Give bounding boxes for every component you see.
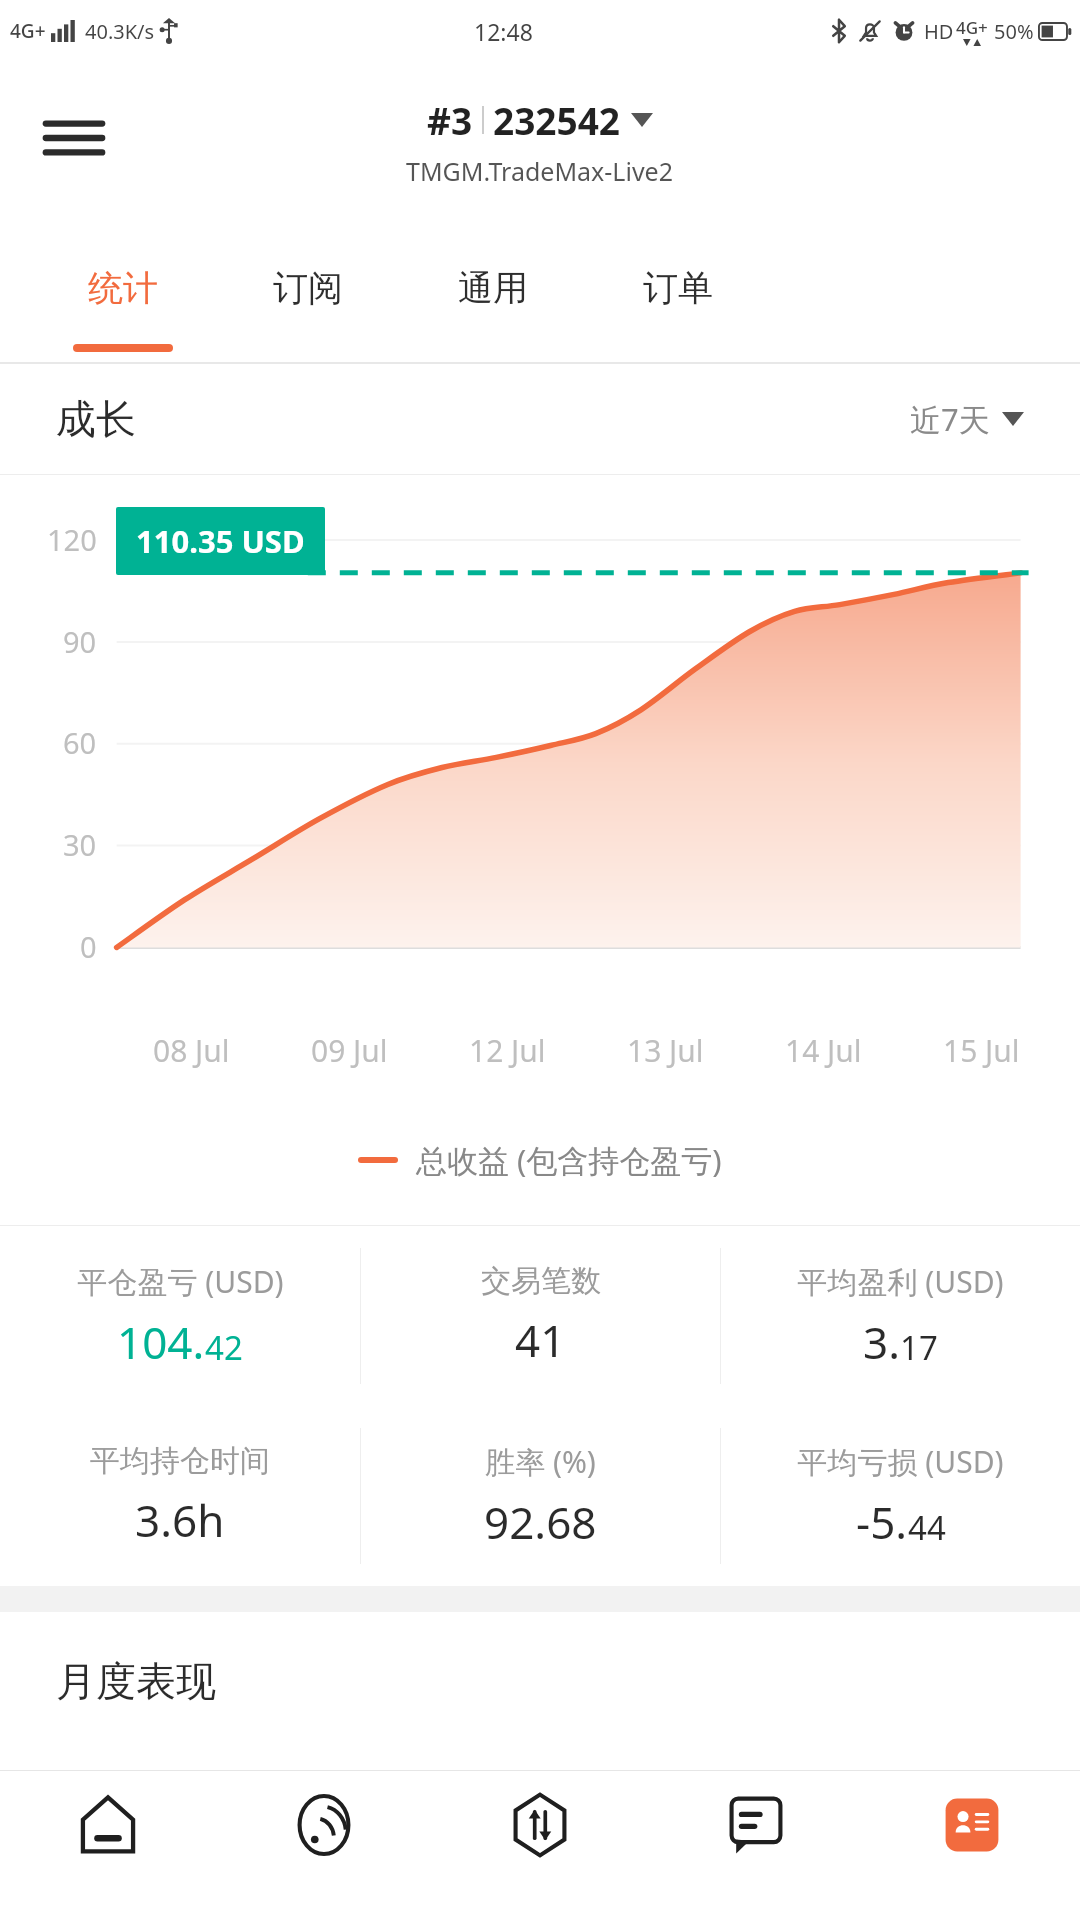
staticText: 月度表现 <box>56 1656 216 1706</box>
button[interactable]: 交易笔数 <box>361 1226 720 1406</box>
staticText: 3.6h <box>135 1490 225 1550</box>
button[interactable]: 订单 <box>585 214 770 362</box>
button[interactable]: 平均亏损 (USD) <box>721 1406 1080 1586</box>
button[interactable]: #3 <box>427 95 653 145</box>
staticText: 08 Jul <box>153 1030 230 1071</box>
button[interactable]: 通用 <box>400 214 585 362</box>
staticText: 17 <box>900 1325 938 1370</box>
staticText: 12 Jul <box>469 1030 546 1071</box>
staticText: HD <box>924 18 954 45</box>
button[interactable]: Messages <box>648 1784 864 1920</box>
button[interactable]: 平仓盈亏 (USD) <box>0 1226 360 1406</box>
button[interactable]: 平均盈利 (USD) <box>721 1226 1080 1406</box>
staticText: 110.35 USD <box>136 520 305 562</box>
button[interactable]: Trade <box>432 1784 648 1920</box>
button[interactable]: Signals <box>216 1784 432 1920</box>
staticText: 平仓盈亏 (USD) <box>77 1261 284 1302</box>
staticText: 4G+ <box>956 16 988 39</box>
staticText: 42 <box>205 1325 243 1370</box>
staticText: 92.68 <box>484 1492 597 1552</box>
staticText: 30 <box>63 825 97 864</box>
staticText: 14 Jul <box>785 1030 862 1071</box>
staticText: 平均盈利 (USD) <box>797 1261 1004 1302</box>
button[interactable]: 统计 <box>30 214 215 362</box>
staticText: 近7天 <box>910 398 990 440</box>
staticText: 统计 <box>88 266 158 310</box>
staticText: 4G+ <box>10 18 46 44</box>
button[interactable]: Home <box>0 1784 216 1920</box>
staticText: 90 <box>63 622 97 661</box>
button[interactable]: 平均持仓时间 <box>0 1406 360 1586</box>
button[interactable]: 近7天 <box>910 398 1024 440</box>
staticText: -5. <box>856 1492 908 1552</box>
staticText: 平均亏损 (USD) <box>797 1441 1004 1482</box>
staticText: 胜率 (%) <box>485 1441 596 1482</box>
staticText: 41 <box>515 1310 566 1370</box>
staticText: 232542 <box>493 95 620 145</box>
staticText: 13 Jul <box>627 1030 704 1071</box>
staticText: 09 Jul <box>311 1030 388 1071</box>
button[interactable]: Profile <box>864 1784 1080 1920</box>
staticText: 总收益 (包含持仓盈亏) <box>416 1139 722 1181</box>
staticText: 成长 <box>56 394 136 444</box>
staticText: 0 <box>80 927 97 966</box>
staticText: 平均持仓时间 <box>90 1442 270 1480</box>
staticText: 12:48 <box>474 16 533 47</box>
staticText: 120 <box>47 520 97 559</box>
staticText: 44 <box>908 1505 946 1550</box>
staticText: #3 <box>427 95 473 145</box>
button[interactable]: 订阅 <box>215 214 400 362</box>
staticText: 60 <box>63 723 97 762</box>
staticText: 15 Jul <box>943 1030 1020 1071</box>
button[interactable]: Menu <box>36 100 112 176</box>
staticText: 104. <box>117 1312 205 1372</box>
staticText: 3. <box>863 1312 900 1372</box>
staticText: 交易笔数 <box>481 1262 601 1300</box>
staticText: TMGM.TradeMax-Live2 <box>406 154 674 188</box>
button[interactable]: 胜率 (%) <box>361 1406 720 1586</box>
staticText: 订阅 <box>273 266 343 310</box>
staticText: 通用 <box>458 266 528 310</box>
staticText: 40.3K/s <box>85 18 155 45</box>
staticText: 订单 <box>643 266 713 310</box>
staticText: 50% <box>994 18 1034 45</box>
